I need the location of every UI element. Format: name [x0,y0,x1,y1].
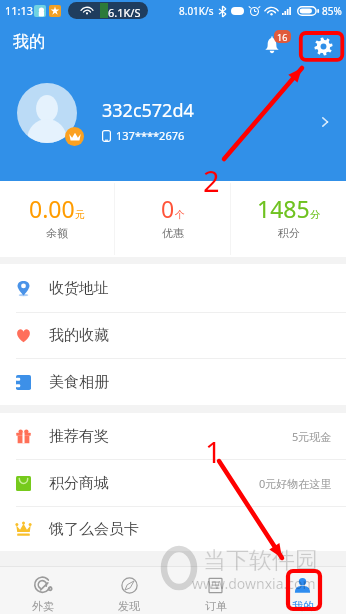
staticText: 我的 [13,32,45,52]
staticText: 16 [277,31,288,43]
button[interactable]: 美食相册 [0,359,346,405]
staticText: 发现 [118,599,140,613]
staticText: 订单 [205,599,227,613]
button[interactable]: 收货地址 [0,264,346,312]
staticText: 8.01K/s [179,4,214,18]
button[interactable]: 发现 [86,566,172,614]
button[interactable]: 饿了么会员卡 [0,507,346,551]
staticText: 137****2676 [116,128,185,143]
staticText: 0元好物在这里 [259,476,332,491]
button[interactable]: 0.00 [0,181,114,257]
staticText: 余额 [46,226,68,240]
staticText: 0.00 [29,193,75,224]
staticText: 我的 [292,599,314,613]
button[interactable]: 1485 [231,181,346,257]
staticText: 饿了么会员卡 [49,520,139,539]
staticText: 分 [310,208,320,221]
button[interactable]: 积分商城 [0,460,346,506]
staticText: 我的收藏 [49,326,109,345]
staticText: 个 [175,208,185,221]
button[interactable]: Settings [305,29,340,64]
staticText: 优惠 [162,226,184,240]
button[interactable]: 0 [115,181,230,257]
button[interactable]: 外卖 [0,566,86,614]
staticText: 0 [161,193,175,224]
staticText: 当下软件园 [203,546,318,575]
staticText: 11:13 [5,3,34,18]
button[interactable]: 我的收藏 [0,313,346,358]
staticText: 1 [205,432,222,471]
staticText: 332c572d4 [102,98,194,123]
staticText: 85% [322,4,342,18]
button[interactable]: 订单 [172,566,259,614]
button[interactable]: 332c572d4 [0,62,346,181]
button[interactable]: 推荐有奖 [0,413,346,459]
staticText: 美食相册 [49,373,109,392]
staticText: 推荐有奖 [49,427,109,446]
staticText: www.downxia.com [192,574,316,593]
staticText: 外卖 [32,599,54,613]
staticText: 2 [203,161,220,200]
staticText: 1485 [257,193,310,224]
staticText: 元 [75,208,85,221]
staticText: 6.1K/S [108,5,141,19]
staticText: 积分 [278,226,300,240]
staticText: 5元现金 [292,429,332,444]
button[interactable]: 我的 [259,566,346,614]
staticText: 收货地址 [49,279,109,298]
button[interactable]: Notifications [256,27,292,63]
staticText: 积分商城 [49,474,109,493]
